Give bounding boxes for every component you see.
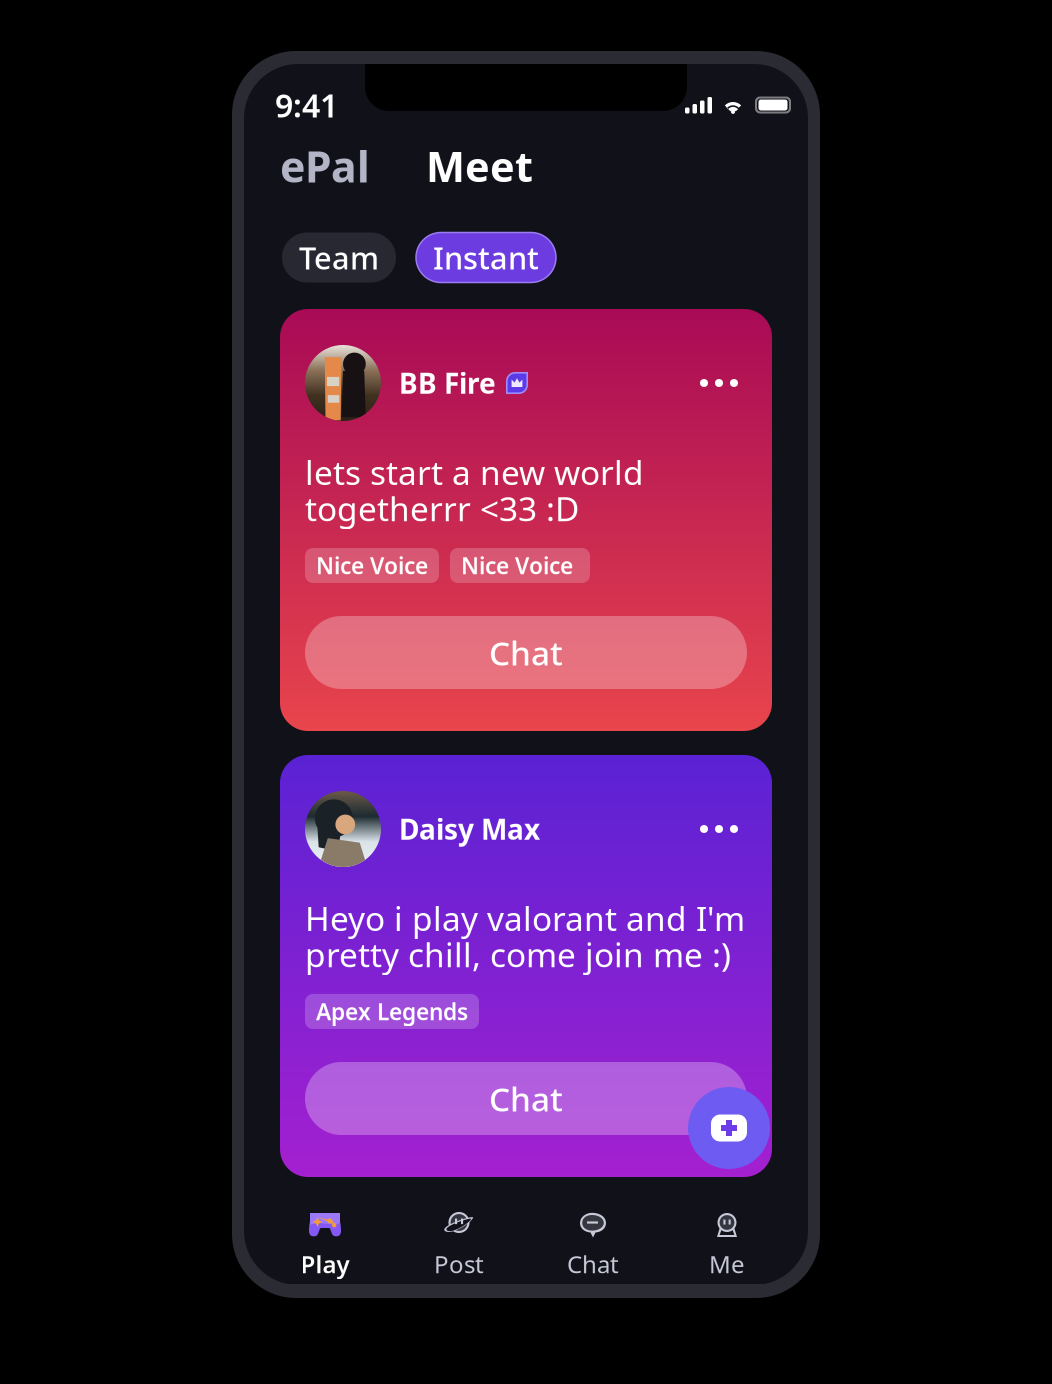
staticText: Team: [299, 237, 379, 278]
button[interactable]: More options: [691, 360, 747, 406]
button[interactable]: More options: [691, 806, 747, 852]
staticText: Apex Legends: [316, 996, 468, 1026]
button[interactable]: Team: [282, 232, 396, 282]
button[interactable]: Chat: [305, 1062, 747, 1135]
staticText: Nice Voice: [316, 550, 428, 580]
button[interactable]: Post: [392, 1177, 526, 1286]
staticText: Post: [434, 1248, 484, 1280]
staticText: Heyo i play valorant and I'm pretty chil…: [305, 896, 745, 976]
button[interactable]: Instant: [416, 232, 556, 282]
staticText: 9:41: [275, 84, 338, 126]
staticText: Daisy Max: [399, 810, 540, 848]
button[interactable]: Play: [258, 1177, 392, 1286]
staticText: ePal: [280, 138, 370, 194]
staticText: BB Fire: [399, 364, 496, 402]
button[interactable]: Me: [660, 1177, 794, 1286]
staticText: Chat: [567, 1248, 619, 1280]
button[interactable]: New post: [688, 1087, 770, 1169]
staticText: lets start a new world togetherrr <33 :D: [305, 450, 644, 530]
staticText: Meet: [426, 139, 533, 193]
staticText: Chat: [489, 630, 563, 675]
staticText: Nice Voice: [461, 550, 579, 580]
button[interactable]: Chat: [305, 616, 747, 689]
staticText: Play: [300, 1248, 349, 1280]
staticText: Instant: [433, 237, 539, 278]
staticText: Chat: [489, 1076, 563, 1121]
button[interactable]: Chat: [526, 1177, 660, 1286]
staticText: Me: [709, 1248, 745, 1280]
